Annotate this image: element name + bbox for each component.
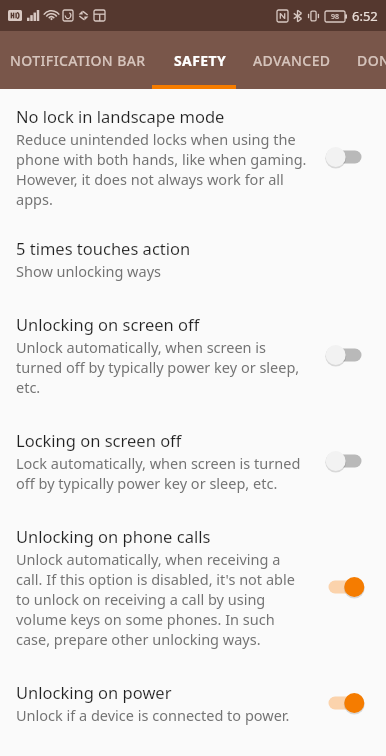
button[interactable]: Toggle on	[318, 686, 372, 720]
staticText: NOTIFICATION BAR	[10, 51, 146, 70]
button[interactable]: Unlocking on power	[0, 671, 386, 747]
button[interactable]: NOTIFICATION BAR	[10, 33, 146, 88]
staticText: 98	[331, 12, 340, 22]
staticText: Unlocking on screen off	[16, 313, 200, 335]
button[interactable]: SAFETY	[174, 33, 227, 88]
staticText: Unlocking on power	[16, 681, 172, 703]
staticText: 5 times touches action	[16, 237, 191, 259]
staticText: Lock automatically, when screen is turne…	[16, 453, 308, 493]
staticText: Unlocking on phone calls	[16, 525, 211, 547]
staticText: Unlock automatically, when receiving a c…	[16, 549, 308, 649]
button[interactable]: Toggle off	[318, 140, 372, 174]
staticText: DONATE	[357, 51, 386, 70]
button[interactable]: Unlocking on phone calls	[0, 515, 386, 671]
button[interactable]: Toggle off	[318, 338, 372, 372]
button[interactable]: No lock in landscape mode	[0, 89, 386, 229]
staticText: Unlock automatically, when screen is tur…	[16, 337, 308, 397]
button[interactable]: Toggle on	[318, 570, 372, 604]
button[interactable]: DONATE	[357, 33, 386, 88]
button[interactable]: Toggle off	[318, 444, 372, 478]
button[interactable]: Unlocking on screen off	[0, 303, 386, 419]
staticText: Show unlocking ways	[16, 261, 161, 281]
staticText: Reduce unintended locks when using the p…	[16, 129, 308, 209]
button[interactable]: 5 times touches action	[0, 229, 386, 303]
button[interactable]: ADVANCED	[253, 33, 331, 88]
staticText: Unlock if a device is connected to power…	[16, 705, 290, 725]
button[interactable]: Locking on screen off	[0, 419, 386, 515]
staticText: 6:52	[352, 7, 378, 25]
staticText: Locking on screen off	[16, 429, 182, 451]
staticText: No lock in landscape mode	[16, 105, 225, 127]
staticText: SAFETY	[174, 51, 227, 70]
staticText: ADVANCED	[253, 51, 331, 70]
